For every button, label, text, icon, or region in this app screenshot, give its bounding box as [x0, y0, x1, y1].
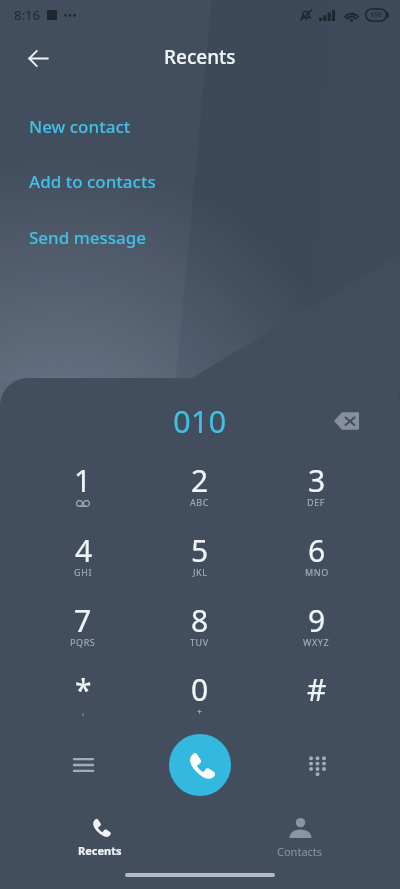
button[interactable]: 2 [141, 460, 258, 530]
button[interactable]: Recents [0, 804, 200, 889]
button[interactable]: 4 [25, 530, 141, 600]
staticText: 8 [191, 600, 209, 641]
staticText: 4 [75, 530, 93, 571]
button[interactable]: 3 [258, 460, 375, 530]
button[interactable]: Backspace [326, 401, 366, 441]
staticText: , [82, 705, 86, 717]
staticText: # [307, 669, 327, 710]
staticText: JKL [193, 566, 208, 578]
button[interactable]: 8 [141, 600, 258, 670]
button[interactable]: Contacts [200, 804, 400, 889]
staticText: DEF [307, 496, 326, 508]
button[interactable]: # [258, 669, 375, 739]
staticText: 8:16 [14, 6, 40, 24]
button[interactable]: 1 [25, 460, 141, 530]
staticText: Recents [164, 44, 236, 70]
staticText: ABC [190, 496, 210, 508]
staticText: Add to contacts [29, 170, 156, 193]
button[interactable]: 9 [258, 600, 375, 670]
button[interactable]: 7 [25, 600, 141, 670]
staticText: 0 [191, 669, 209, 710]
staticText: 100 [370, 10, 383, 20]
button[interactable]: Dialpad [297, 745, 337, 785]
staticText: 9 [308, 600, 326, 641]
button[interactable]: Send message [0, 210, 400, 265]
button[interactable]: New contact [0, 99, 400, 154]
staticText: GHI [74, 566, 93, 578]
staticText: Recents [78, 843, 122, 858]
staticText: New contact [29, 115, 131, 138]
button[interactable]: Back [20, 40, 56, 76]
staticText: + [197, 705, 203, 717]
staticText: Send message [29, 226, 147, 249]
button[interactable]: * [25, 669, 141, 739]
staticText: * [75, 669, 92, 710]
staticText: 010 [173, 400, 227, 442]
button[interactable]: 5 [141, 530, 258, 600]
staticText: PQRS [70, 636, 96, 648]
staticText: 3 [308, 460, 326, 501]
staticText: MNO [305, 566, 329, 578]
staticText: Contacts [277, 844, 323, 859]
button[interactable]: 0 [141, 669, 258, 739]
button[interactable]: Menu [63, 745, 103, 785]
staticText: 1 [74, 460, 92, 501]
button[interactable]: 6 [258, 530, 375, 600]
staticText: 7 [74, 600, 92, 641]
button[interactable]: Add to contacts [0, 154, 400, 209]
button[interactable]: Call [169, 734, 231, 796]
staticText: WXYZ [303, 636, 330, 648]
staticText: TUV [190, 636, 209, 648]
staticText: 2 [191, 460, 209, 501]
staticText: 6 [308, 530, 326, 571]
staticText: 5 [191, 530, 209, 571]
